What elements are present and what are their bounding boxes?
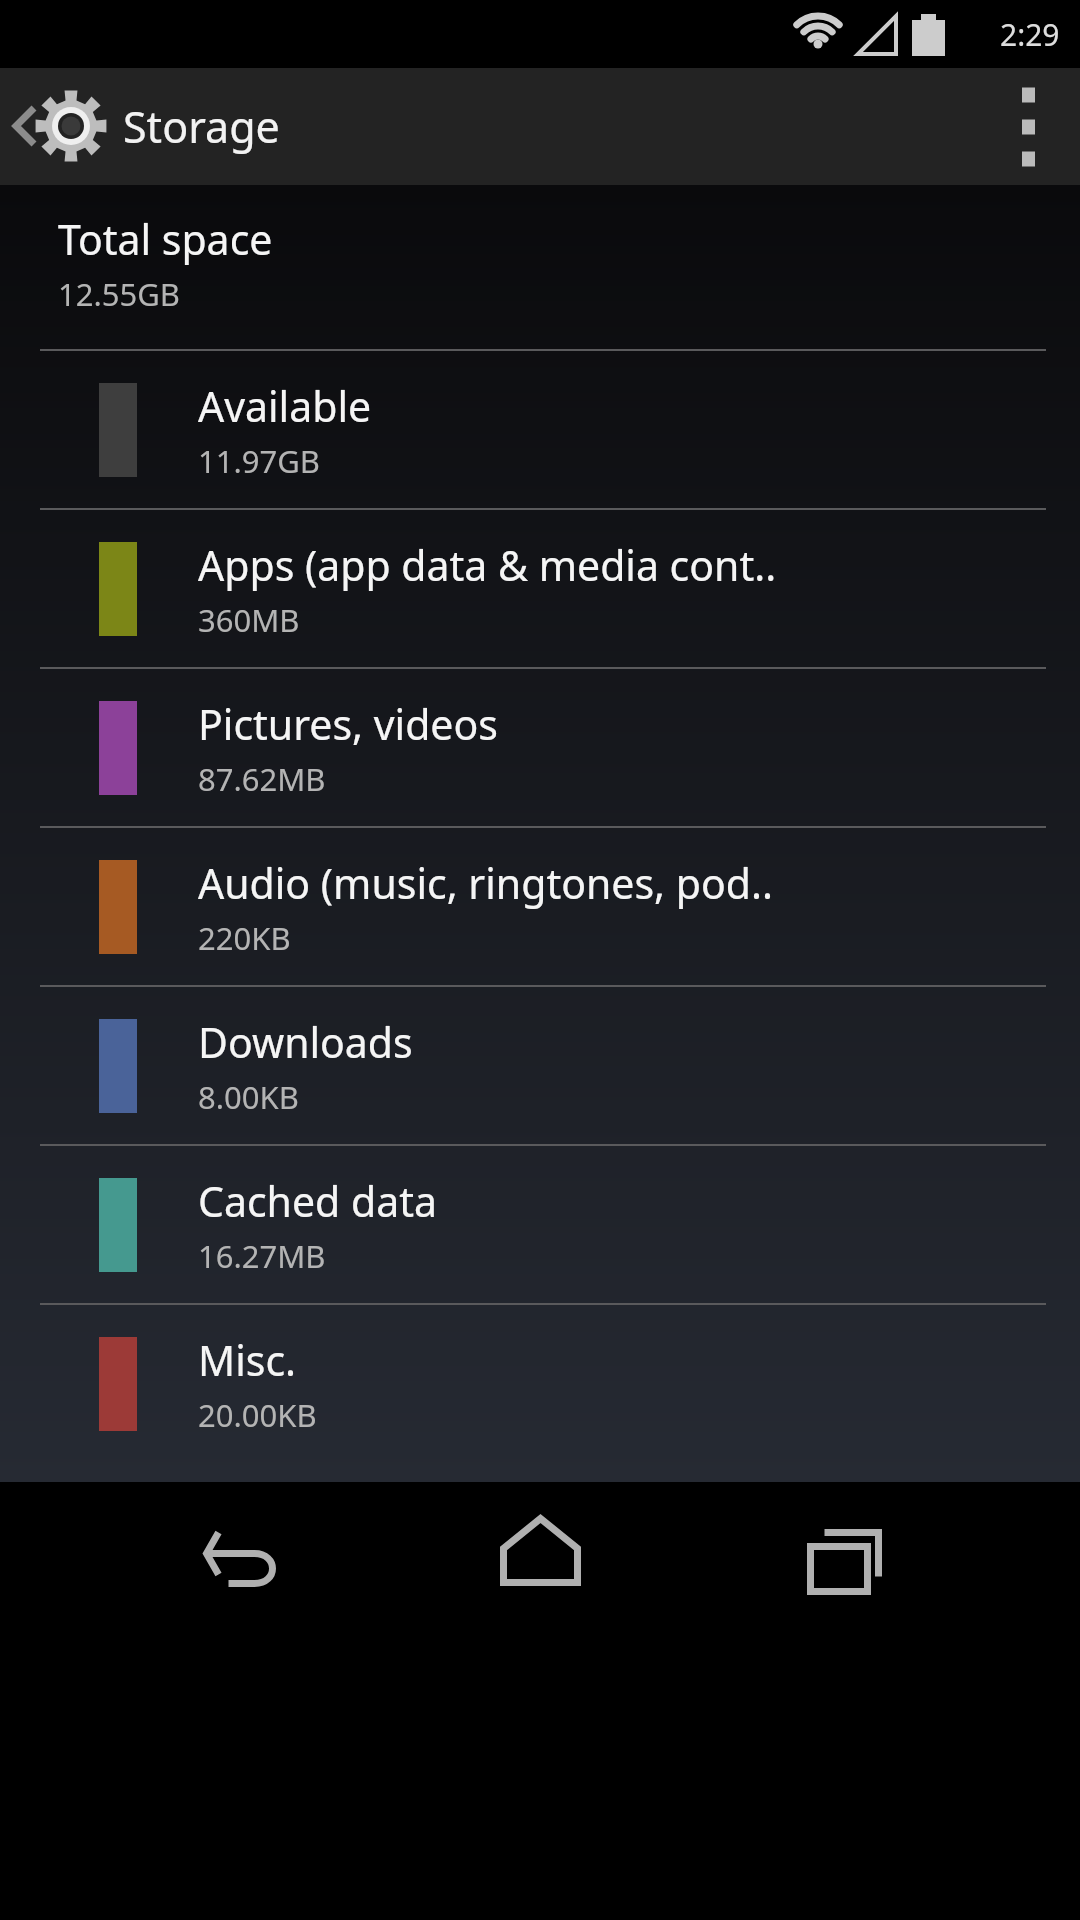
button[interactable]: Recent apps <box>772 1482 917 1627</box>
button[interactable]: Cached data <box>0 1146 1080 1303</box>
staticText: 20.00KB <box>198 1394 317 1436</box>
staticText: Downloads <box>198 1014 413 1070</box>
button[interactable]: Back <box>168 1482 313 1627</box>
staticText: 360MB <box>198 599 300 641</box>
staticText: Audio (music, ringtones, pod.. <box>198 855 773 911</box>
staticText: Misc. <box>198 1332 297 1388</box>
staticText: Total space <box>58 211 273 267</box>
button[interactable]: Available <box>0 351 1080 508</box>
button[interactable]: Home <box>468 1482 613 1627</box>
staticText: 220KB <box>198 917 291 959</box>
button[interactable]: Back to Settings <box>0 68 120 185</box>
staticText: Pictures, videos <box>198 696 498 752</box>
button[interactable]: Total space <box>0 185 1080 349</box>
button[interactable]: Pictures, videos <box>0 669 1080 826</box>
button[interactable]: Misc. <box>0 1305 1080 1462</box>
staticText: 87.62MB <box>198 758 326 800</box>
button[interactable]: More options <box>970 68 1080 185</box>
staticText: Cached data <box>198 1173 437 1229</box>
button[interactable]: Audio (music, ringtones, pod.. <box>0 828 1080 985</box>
staticText: 16.27MB <box>198 1235 326 1277</box>
button[interactable]: Downloads <box>0 987 1080 1144</box>
staticText: 2:29 <box>1000 14 1060 55</box>
staticText: Apps (app data & media cont.. <box>198 537 777 593</box>
staticText: 8.00KB <box>198 1076 299 1118</box>
staticText: Available <box>198 378 372 434</box>
button[interactable]: Apps (app data & media cont.. <box>0 510 1080 667</box>
staticText: 11.97GB <box>198 440 320 482</box>
staticText: Storage <box>123 97 280 156</box>
staticText: 12.55GB <box>58 273 180 315</box>
